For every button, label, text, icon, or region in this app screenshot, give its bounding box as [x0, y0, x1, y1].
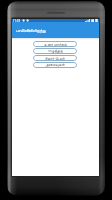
button[interactable]: அமைவுகள் — [33, 62, 77, 68]
staticText: உரை மாற்றம் — [44, 42, 67, 47]
button[interactable]: எழுத்துரு — [33, 48, 77, 54]
staticText: எழுத்துரு — [48, 49, 63, 53]
staticText: பாமினியிலிருந்து — [16, 29, 46, 33]
button[interactable]: நீதரர் பெயர் — [33, 55, 77, 61]
staticText: 11:18 — [13, 19, 21, 22]
button[interactable]: உரை மாற்றம் — [33, 41, 77, 47]
staticText: அமைவுகள் — [45, 63, 65, 67]
staticText: நீதரர் பெயர் — [45, 56, 65, 61]
